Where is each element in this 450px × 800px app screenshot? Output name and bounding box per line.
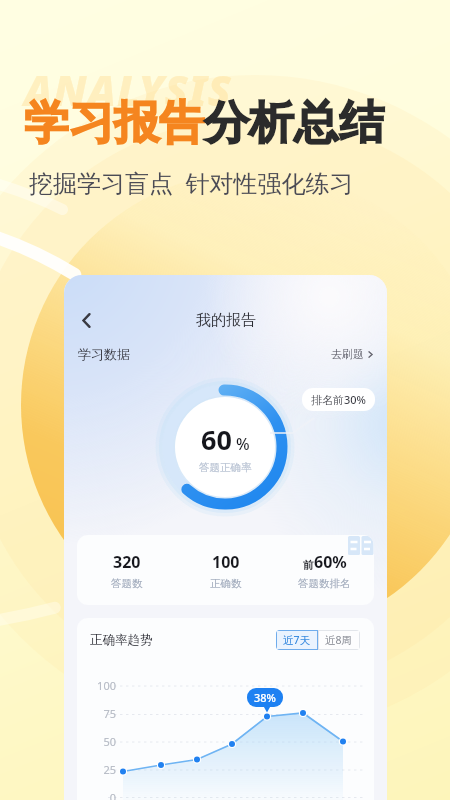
- button[interactable]: 去刷题: [331, 347, 374, 361]
- staticText: 学习数据: [78, 346, 130, 362]
- staticText: 0: [77, 790, 116, 800]
- staticText: 60%: [314, 551, 347, 573]
- staticText: 排名前30%: [311, 392, 366, 407]
- staticText: 答题正确率: [199, 461, 252, 474]
- staticText: 我的报告: [196, 311, 256, 330]
- staticText: 挖掘学习盲点 针对性强化练习: [29, 166, 354, 199]
- staticText: 38%: [254, 690, 276, 705]
- staticText: 320: [113, 551, 141, 573]
- button[interactable]: 320: [77, 551, 176, 590]
- staticText: 正确率趋势: [90, 632, 153, 648]
- staticText: %: [236, 433, 250, 455]
- staticText: 50: [77, 734, 116, 749]
- button[interactable]: 近8周: [318, 630, 360, 650]
- staticText: 正确数: [210, 577, 242, 590]
- staticText: ANALYSIS: [24, 61, 232, 118]
- staticText: 前: [303, 558, 314, 572]
- staticText: 近8周: [325, 633, 353, 647]
- staticText: 75: [77, 706, 116, 721]
- staticText: 100: [77, 678, 116, 693]
- staticText: 学习报告: [24, 95, 204, 152]
- staticText: 60: [201, 421, 232, 458]
- button[interactable]: 38%: [254, 690, 276, 705]
- staticText: 25: [77, 762, 116, 777]
- staticText: 答题数: [111, 577, 143, 590]
- button[interactable]: Back: [71, 305, 101, 335]
- button[interactable]: 近7天: [276, 630, 318, 650]
- button[interactable]: 前: [275, 551, 374, 590]
- staticText: 分析总结: [204, 95, 384, 152]
- staticText: 去刷题: [331, 347, 364, 361]
- staticText: 答题数排名: [298, 577, 351, 590]
- staticText: 100: [212, 551, 240, 573]
- staticText: 近7天: [283, 633, 311, 647]
- button[interactable]: 100: [176, 551, 275, 590]
